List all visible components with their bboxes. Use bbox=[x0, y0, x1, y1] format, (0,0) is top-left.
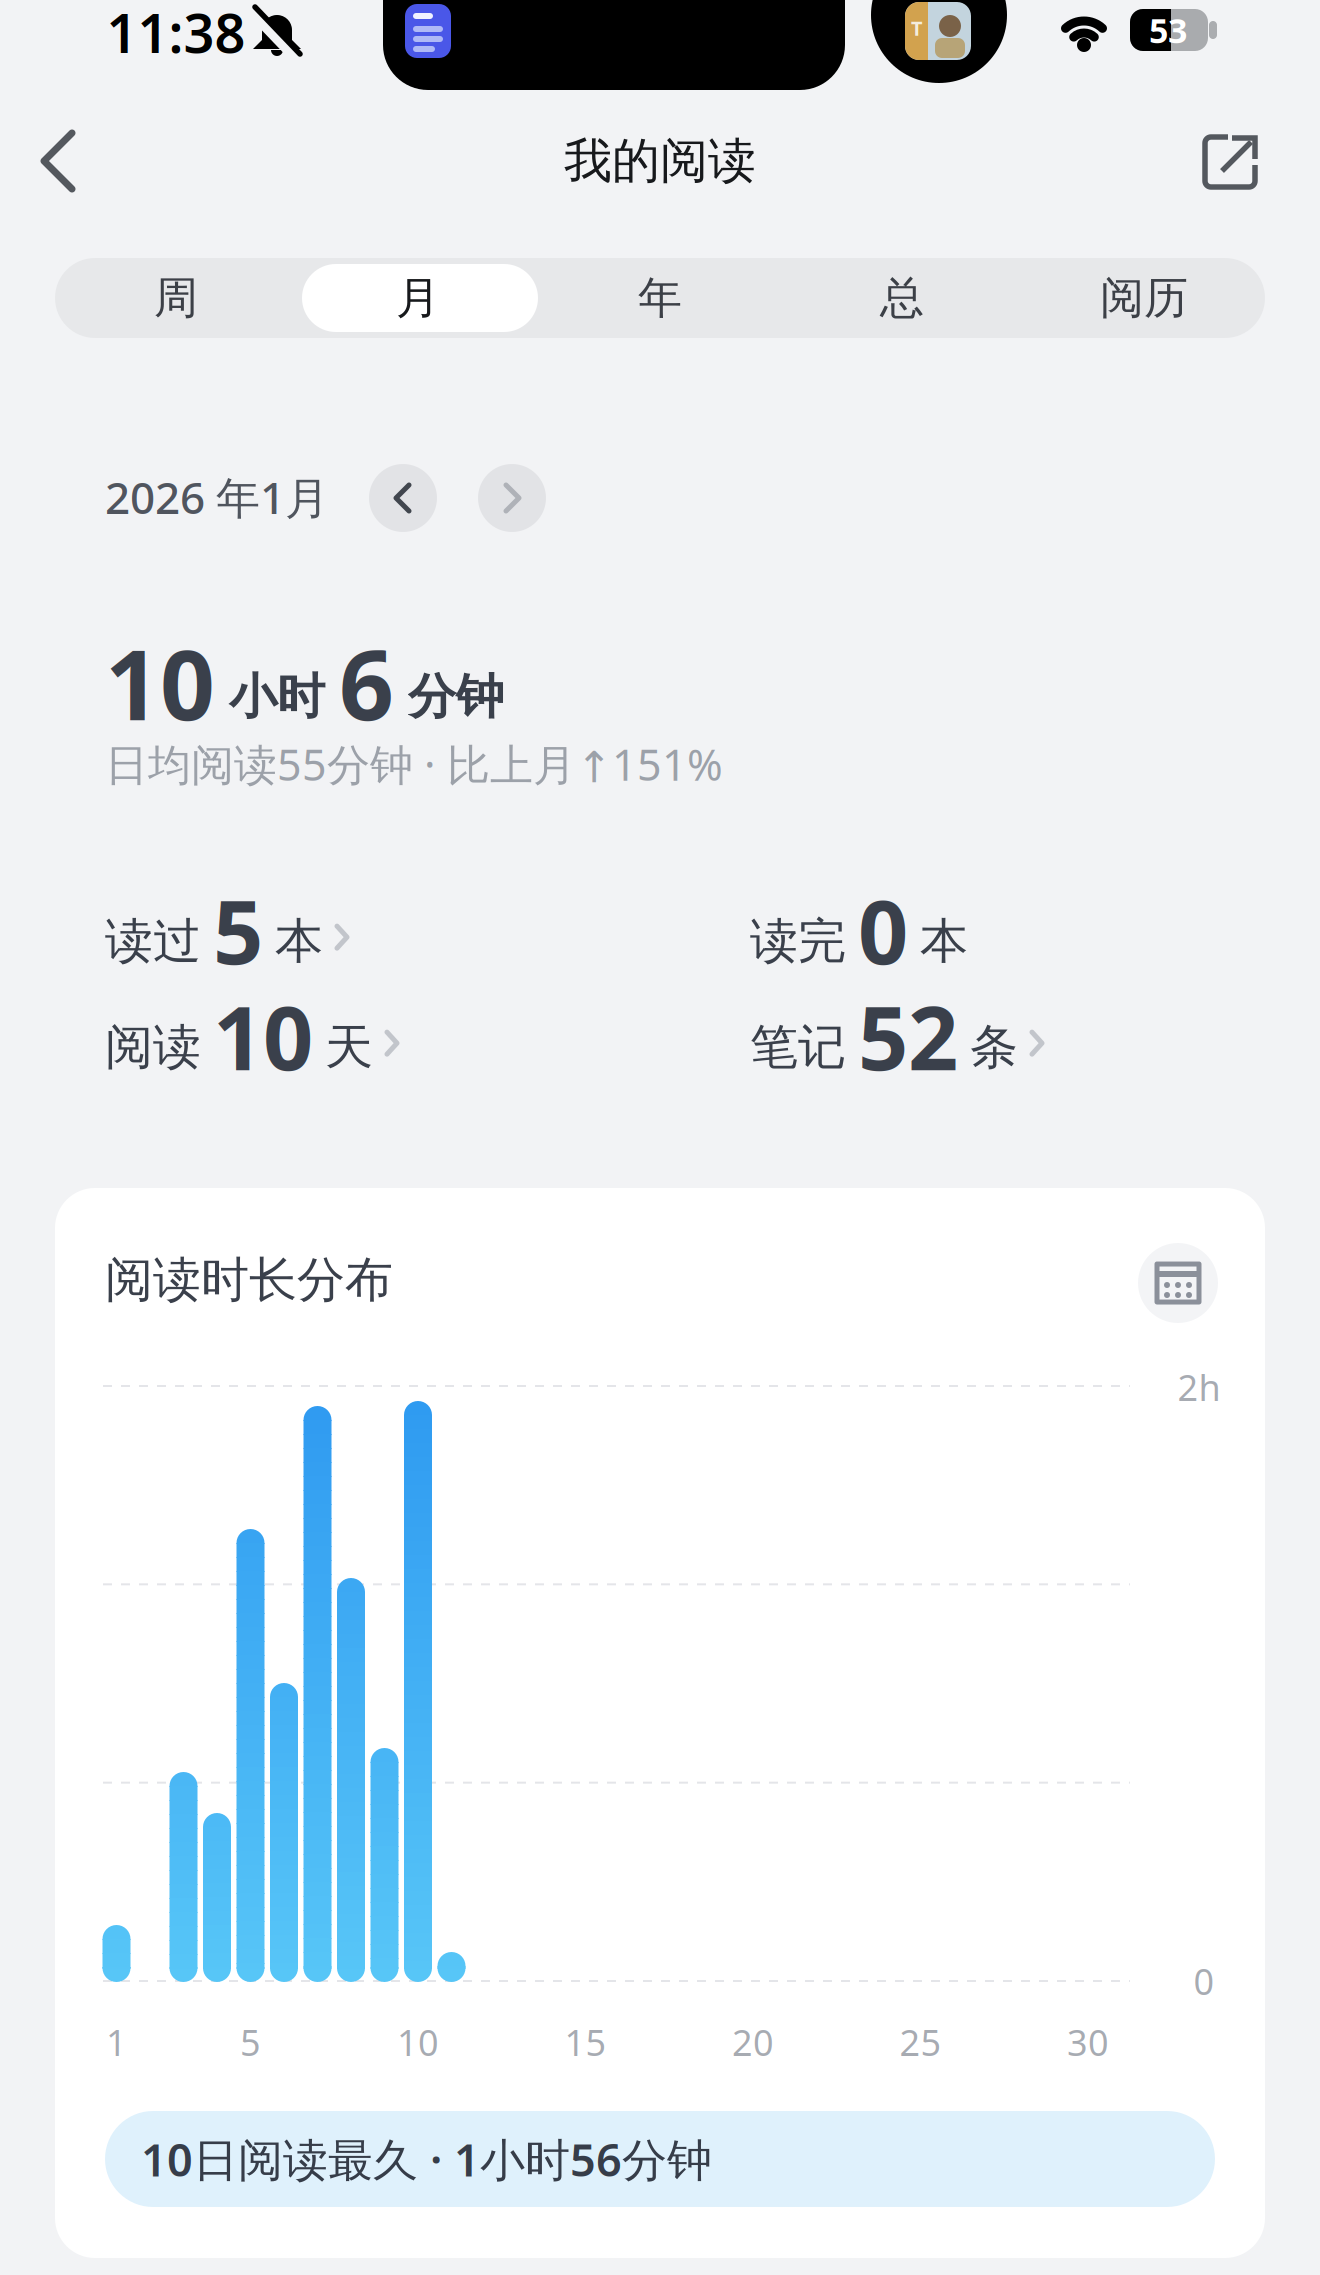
staticText: 5 bbox=[240, 2018, 261, 2066]
staticText: 10日阅读最久 · 1小时56分钟 bbox=[141, 2129, 712, 2189]
staticText: 0 bbox=[858, 872, 908, 988]
staticText: 25 bbox=[899, 2018, 941, 2066]
staticText: 周 bbox=[154, 271, 198, 325]
staticText: 5 bbox=[213, 872, 263, 988]
staticText: 年 bbox=[638, 271, 682, 325]
staticText: 笔记 bbox=[750, 1018, 846, 1077]
staticText: 总 bbox=[880, 271, 924, 325]
button[interactable]: 上个月 bbox=[369, 464, 437, 532]
button[interactable]: 阅历 bbox=[1026, 260, 1262, 336]
staticText: 52 bbox=[858, 978, 958, 1094]
button[interactable]: 总 bbox=[784, 260, 1020, 336]
button[interactable]: 下个月 bbox=[478, 464, 546, 532]
button[interactable]: 年 bbox=[542, 260, 778, 336]
staticText: 阅读 bbox=[105, 1018, 201, 1077]
staticText: 2026 年1月 bbox=[105, 468, 329, 526]
staticText: 本 bbox=[920, 912, 968, 971]
staticText: 阅历 bbox=[1100, 271, 1188, 325]
staticText: 11:38 bbox=[106, 0, 245, 68]
staticText: 阅读时长分布 bbox=[105, 1250, 393, 1309]
button[interactable]: 月 bbox=[300, 260, 536, 336]
staticText: 条 bbox=[970, 1018, 1018, 1077]
staticText: 20 bbox=[732, 2018, 774, 2066]
staticText: 10 bbox=[213, 978, 313, 1094]
staticText: 0 bbox=[1193, 1957, 1214, 2005]
button[interactable]: 周 bbox=[58, 260, 294, 336]
staticText: 日均阅读55分钟 · 比上月↑151% bbox=[105, 735, 723, 792]
staticText: 小时 bbox=[229, 667, 325, 726]
button[interactable]: 读过 bbox=[105, 868, 665, 992]
staticText: 6 bbox=[339, 619, 394, 747]
staticText: 10 bbox=[397, 2018, 439, 2066]
staticText: 读完 bbox=[750, 912, 846, 971]
staticText: 月 bbox=[396, 271, 440, 325]
staticText: 53 bbox=[1149, 7, 1187, 53]
staticText: 本 bbox=[275, 912, 323, 971]
button[interactable]: 日历 bbox=[1138, 1243, 1218, 1323]
button[interactable]: 笔记 bbox=[750, 974, 1250, 1098]
button[interactable]: 阅读 bbox=[105, 974, 665, 1098]
staticText: 我的阅读 bbox=[564, 131, 756, 190]
staticText: 天 bbox=[325, 1018, 373, 1077]
staticText: 30 bbox=[1067, 2018, 1109, 2066]
staticText: T bbox=[911, 15, 923, 41]
button[interactable]: 分享 bbox=[1192, 124, 1268, 200]
staticText: 读过 bbox=[105, 912, 201, 971]
staticText: 15 bbox=[564, 2018, 606, 2066]
staticText: 分钟 bbox=[408, 667, 504, 726]
button[interactable]: 返回 bbox=[24, 121, 96, 201]
staticText: 2h bbox=[1177, 1363, 1220, 1411]
staticText: 10 bbox=[105, 619, 215, 747]
staticText: 1 bbox=[106, 2018, 127, 2066]
